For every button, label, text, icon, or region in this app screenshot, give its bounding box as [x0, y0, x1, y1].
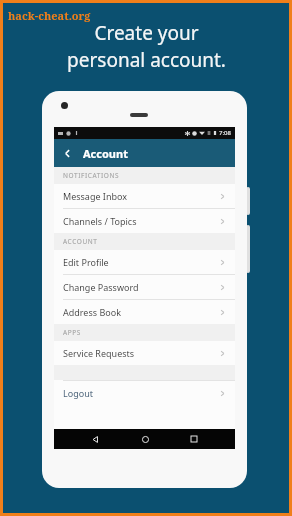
staticText: Message Inbox	[63, 190, 128, 202]
button[interactable]: Logout	[54, 381, 235, 405]
staticText: Change Password	[63, 281, 139, 293]
button[interactable]: Edit Profile	[54, 250, 235, 274]
staticText: Logout	[63, 387, 93, 399]
staticText: Address Book	[63, 306, 121, 318]
staticText: Service Requests	[63, 347, 135, 359]
staticText: NOTIFICATIONS	[63, 171, 120, 180]
staticText: personal account.	[67, 47, 226, 73]
button[interactable]: Home	[136, 430, 154, 448]
button[interactable]: Back	[86, 430, 104, 448]
button[interactable]: Channels / Topics	[54, 209, 235, 233]
button[interactable]: Recent apps	[185, 430, 203, 448]
button[interactable]: Address Book	[54, 300, 235, 324]
staticText: Account	[83, 146, 128, 161]
staticText: ACCOUNT	[63, 237, 98, 246]
staticText: Create your	[94, 20, 199, 46]
button[interactable]: Service Requests	[54, 341, 235, 365]
button[interactable]: Change Password	[54, 275, 235, 299]
button[interactable]: Message Inbox	[54, 184, 235, 208]
staticText: hack-cheat.org	[8, 8, 91, 23]
button[interactable]: Back	[54, 140, 80, 166]
staticText: APPS	[63, 328, 81, 337]
staticText: 7:08	[219, 129, 231, 137]
staticText: Edit Profile	[63, 256, 109, 268]
staticText: Channels / Topics	[63, 215, 137, 227]
